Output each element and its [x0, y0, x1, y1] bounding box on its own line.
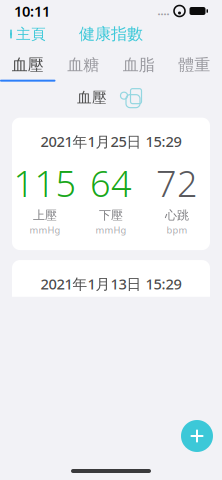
staticText: 血脂 [123, 55, 155, 75]
staticText: bpm [166, 224, 187, 236]
staticText: 63 [90, 444, 132, 480]
staticText: 血糖 [67, 55, 99, 75]
staticText: 健康指數 [79, 24, 143, 44]
staticText: mmHg [95, 224, 126, 236]
button[interactable]: 血脂 [111, 50, 166, 80]
staticText: .... [157, 4, 169, 18]
staticText: 2021年1月25日 15:29 [40, 132, 181, 151]
staticText: 72 [156, 159, 198, 207]
staticText: 109 [13, 444, 76, 480]
staticText: 下壓 [99, 208, 123, 223]
button[interactable]: 血壓 [0, 50, 55, 80]
staticText: 體重 [178, 55, 210, 75]
staticText: 主頁 [16, 25, 46, 43]
staticText: 2021年1月13日 15:29 [40, 274, 181, 294]
staticText: 2020年11月30日 16:20 [36, 416, 185, 436]
button[interactable]: Add reading [181, 420, 213, 452]
staticText: 血壓 [77, 89, 107, 107]
staticText: 上壓 [33, 208, 57, 223]
staticText: 血壓 [12, 55, 44, 75]
staticText: 心跳 [165, 208, 189, 223]
staticText: 115 [13, 159, 76, 207]
staticText: mmHg [29, 224, 60, 236]
button[interactable]: 體重 [166, 50, 222, 80]
button[interactable]: 血糖 [55, 50, 111, 80]
button[interactable]: 主頁 [0, 21, 54, 47]
staticText: 64 [90, 159, 132, 207]
staticText: 10:11 [14, 1, 50, 21]
staticText: 55 [156, 444, 198, 480]
